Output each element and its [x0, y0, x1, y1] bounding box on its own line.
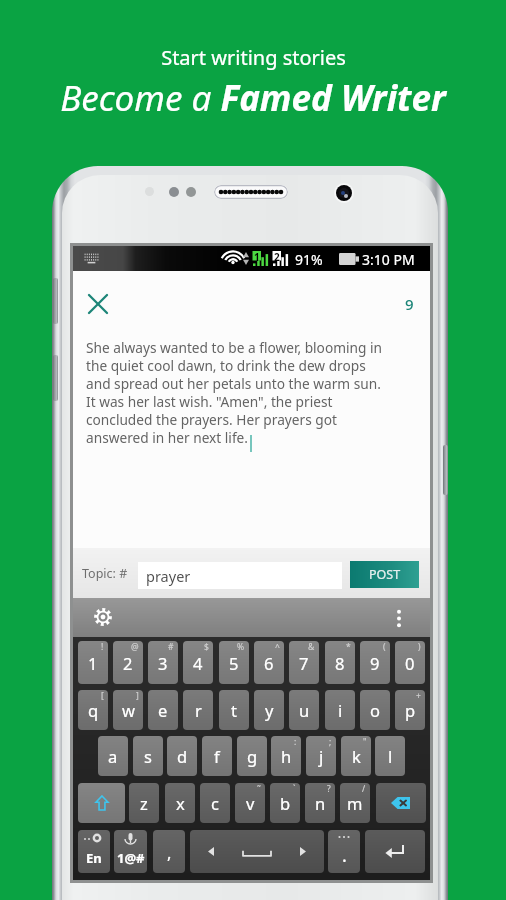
button[interactable]: . [328, 830, 360, 873]
staticText: ) [418, 641, 421, 653]
button[interactable]: ^ [254, 641, 284, 684]
staticText: ( [383, 641, 386, 653]
staticText: * [346, 641, 351, 653]
button[interactable]: " [341, 736, 371, 776]
staticText: 1 [88, 652, 98, 674]
staticText: 91% [295, 250, 323, 269]
button[interactable]: prayer [138, 562, 342, 589]
button[interactable]: ( [360, 641, 390, 684]
staticText: POST [369, 566, 401, 583]
staticText: k [352, 745, 361, 767]
button[interactable]: : [271, 736, 301, 776]
staticText: 4 [193, 652, 203, 674]
staticText: En [86, 849, 102, 867]
staticText: ^ [275, 641, 280, 653]
staticText: d [177, 745, 188, 767]
staticText: ! [101, 641, 104, 653]
staticText: o [370, 699, 380, 721]
button[interactable]: + [395, 690, 425, 730]
button[interactable]: shift [78, 783, 125, 823]
staticText: b [280, 792, 291, 814]
staticText: y [265, 699, 274, 721]
button[interactable]: ` [270, 783, 300, 823]
button[interactable]: / [340, 783, 370, 823]
button[interactable]: Close [85, 291, 111, 317]
staticText: prayer [146, 566, 191, 586]
button[interactable]: More options [387, 606, 411, 630]
button[interactable]: d [167, 736, 197, 776]
staticText: : [294, 736, 297, 748]
staticText: 5 [229, 652, 239, 674]
button[interactable]: @ [113, 641, 143, 684]
staticText: 8 [335, 652, 345, 674]
button[interactable]: y [254, 690, 284, 730]
button[interactable]: u [289, 690, 319, 730]
staticText: r [195, 699, 202, 721]
button[interactable]: o [360, 690, 390, 730]
staticText: u [299, 699, 310, 721]
button[interactable]: enter [365, 830, 425, 873]
button[interactable]: ) [395, 641, 425, 684]
staticText: 6 [264, 652, 274, 674]
staticText: z [140, 792, 148, 814]
staticText: f [214, 745, 220, 767]
button[interactable]: $ [183, 641, 213, 684]
staticText: 2 [123, 652, 133, 674]
staticText: & [308, 641, 315, 653]
button[interactable]: * [325, 641, 355, 684]
button[interactable]: t [219, 690, 249, 730]
staticText: p [405, 699, 416, 721]
staticText: $ [204, 641, 209, 653]
staticText: 3:10 PM [362, 250, 415, 269]
staticText: w [122, 699, 135, 721]
button[interactable]: e [148, 690, 178, 730]
button[interactable]: f [202, 736, 232, 776]
button[interactable]: ! [78, 641, 108, 684]
button[interactable]: z [129, 783, 159, 823]
staticText: " [363, 736, 367, 748]
button[interactable]: del [376, 783, 426, 823]
staticText: / [362, 783, 366, 795]
staticText: t [231, 699, 237, 721]
button[interactable]: g [237, 736, 267, 776]
button[interactable]: r [183, 690, 213, 730]
staticText: 0 [405, 652, 415, 674]
button[interactable]: s [133, 736, 163, 776]
button[interactable]: En [78, 830, 110, 873]
staticText: 7 [299, 652, 309, 674]
button[interactable]: # [148, 641, 178, 684]
button[interactable]: c [200, 783, 230, 823]
button[interactable]: 9 [398, 293, 420, 315]
button[interactable]: Settings [91, 605, 115, 629]
staticText: She always wanted to be a flower, bloomi… [86, 338, 382, 447]
staticText: , [167, 841, 172, 863]
staticText: m [347, 792, 363, 814]
button[interactable]: 1@# [114, 830, 147, 873]
button[interactable]: l [375, 736, 405, 776]
button[interactable]: POST [350, 561, 419, 588]
staticText: i [338, 699, 343, 721]
staticText: n [315, 792, 326, 814]
staticText: 3 [158, 652, 168, 674]
button[interactable]: , [153, 830, 185, 873]
button[interactable]: space [190, 830, 324, 873]
button[interactable]: ˜ [235, 783, 265, 823]
staticText: @ [131, 641, 139, 653]
button[interactable]: % [219, 641, 249, 684]
staticText: x [176, 792, 185, 814]
staticText: ` [293, 783, 296, 795]
button[interactable]: ? [305, 783, 335, 823]
button[interactable]: ] [113, 690, 143, 730]
staticText: 2 [274, 250, 280, 264]
button[interactable]: & [289, 641, 319, 684]
staticText: Start writing stories [161, 44, 346, 71]
button[interactable]: x [165, 783, 195, 823]
button[interactable]: i [325, 690, 355, 730]
staticText: g [247, 745, 258, 767]
staticText: l [388, 745, 393, 767]
button[interactable]: ; [306, 736, 336, 776]
staticText: [ [101, 690, 104, 702]
staticText: ? [327, 783, 331, 795]
button[interactable]: [ [78, 690, 108, 730]
button[interactable]: a [98, 736, 128, 776]
